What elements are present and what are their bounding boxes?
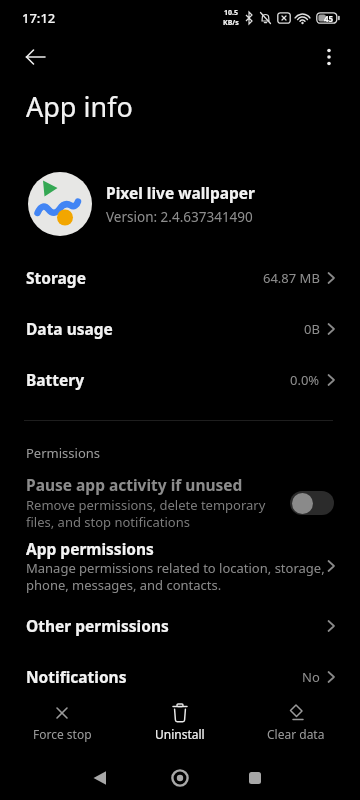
button[interactable]: Pause app activity if unused	[0, 474, 360, 531]
staticText: Uninstall	[155, 726, 205, 742]
button[interactable]: Notifications	[0, 651, 360, 702]
staticText: Force stop	[33, 726, 92, 742]
button[interactable]	[290, 491, 334, 515]
staticText: Clear data	[267, 726, 325, 742]
staticText: Remove permissions, delete temporary fil…	[26, 496, 266, 531]
staticText: 45	[324, 13, 334, 24]
staticText: Other permissions	[26, 615, 169, 636]
button[interactable]: Clear data	[250, 703, 342, 742]
staticText: 17:12	[22, 9, 56, 27]
staticText: Manage permissions related to location, …	[26, 559, 325, 594]
staticText: Pause app activity if unused	[26, 474, 243, 495]
button[interactable]: Uninstall	[134, 703, 226, 742]
staticText: 0.0%	[290, 371, 320, 389]
staticText: 64.87 MB	[263, 269, 320, 287]
button[interactable]	[166, 764, 194, 792]
button[interactable]	[326, 48, 332, 66]
staticText: Storage	[26, 267, 86, 288]
button[interactable]: Storage	[0, 252, 360, 303]
staticText: No	[302, 668, 320, 686]
button[interactable]: Other permissions	[0, 600, 360, 651]
staticText: KB/s	[223, 18, 239, 28]
button[interactable]: Force stop	[16, 703, 108, 742]
staticText: Version: 2.4.637341490	[106, 208, 253, 226]
button[interactable]	[26, 49, 46, 65]
button[interactable]: App permissions	[0, 538, 360, 594]
button[interactable]: Battery	[0, 354, 360, 405]
staticText: App info	[26, 88, 133, 125]
staticText: Notifications	[26, 666, 127, 687]
staticText: App permissions	[26, 538, 154, 559]
staticText: Data usage	[26, 318, 113, 339]
staticText: Battery	[26, 369, 85, 390]
button[interactable]: Data usage	[0, 303, 360, 354]
staticText: Pixel live wallpaper	[106, 182, 256, 203]
staticText: Permissions	[26, 444, 101, 462]
staticText: 0B	[304, 320, 320, 338]
staticText: 10.5	[224, 8, 238, 18]
button[interactable]	[86, 764, 114, 792]
button[interactable]	[241, 764, 269, 792]
